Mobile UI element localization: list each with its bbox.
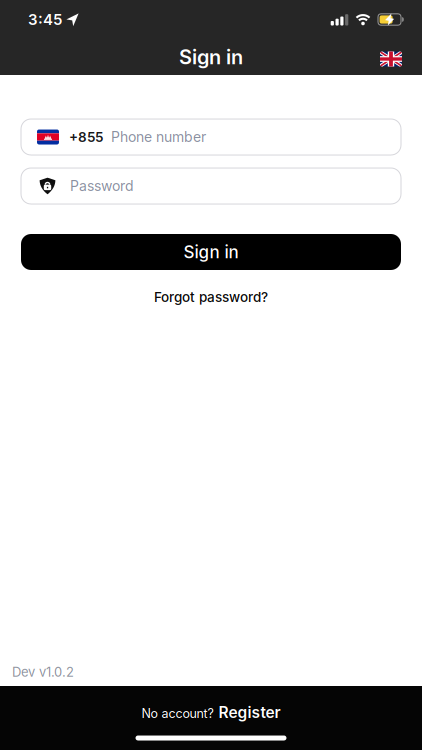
button[interactable]: Password	[21, 168, 401, 204]
staticText: Sign in	[179, 45, 243, 69]
staticText: No account?	[141, 706, 213, 721]
staticText: Forgot password?	[154, 289, 268, 305]
button[interactable]	[380, 51, 402, 66]
staticText: Dev v1.0.2	[12, 664, 74, 680]
staticText: 3:45	[28, 10, 62, 28]
staticText: +855	[69, 129, 103, 145]
button[interactable]: Forgot password?	[154, 289, 268, 305]
staticText: Phone number	[111, 128, 206, 145]
button[interactable]: No account?	[141, 703, 280, 722]
staticText: Sign in	[183, 242, 238, 262]
staticText: Register	[218, 703, 280, 722]
button[interactable]: Sign in	[21, 234, 401, 270]
staticText: Password	[70, 177, 134, 194]
button[interactable]: +855	[21, 119, 401, 155]
